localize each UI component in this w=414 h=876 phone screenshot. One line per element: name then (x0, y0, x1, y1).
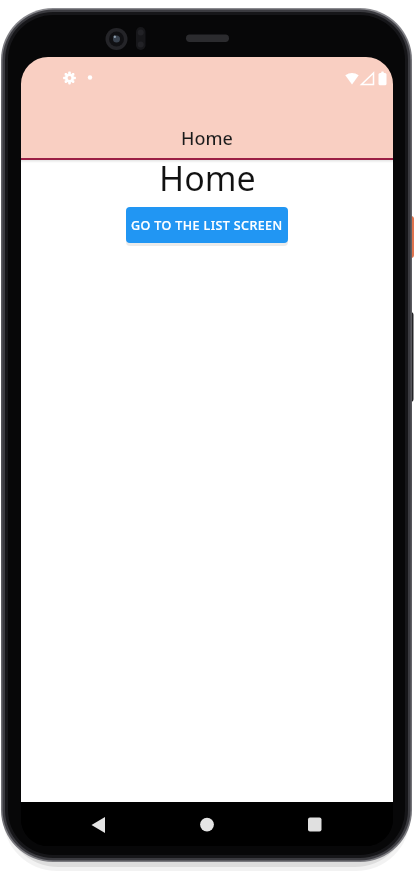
staticText: GO TO THE LIST SCREEN (131, 217, 283, 234)
staticText: Home (159, 155, 256, 201)
button[interactable]: GO TO THE LIST SCREEN (126, 207, 288, 243)
staticText: Home (181, 126, 233, 151)
